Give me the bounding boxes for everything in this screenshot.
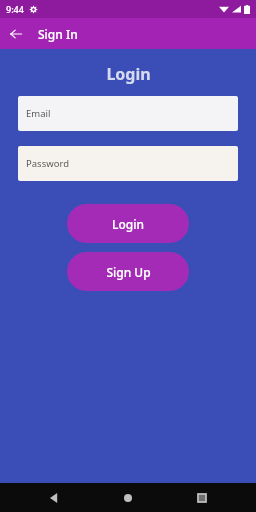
staticText: Sign In [38,26,78,42]
button[interactable]: Back [34,483,74,512]
staticText: Login [106,63,151,85]
staticText: Login [112,216,144,232]
button[interactable]: Email [18,96,238,131]
staticText: 9:44 [6,3,24,15]
button[interactable]: Back [0,18,31,49]
button[interactable]: Password [18,146,238,181]
button[interactable]: Recents [182,483,222,512]
button[interactable]: Login [67,204,189,243]
staticText: Password [26,157,69,170]
staticText: Email [26,107,51,120]
staticText: Sign Up [106,264,151,280]
button[interactable]: Home [108,483,148,512]
button[interactable]: Sign Up [67,252,189,291]
